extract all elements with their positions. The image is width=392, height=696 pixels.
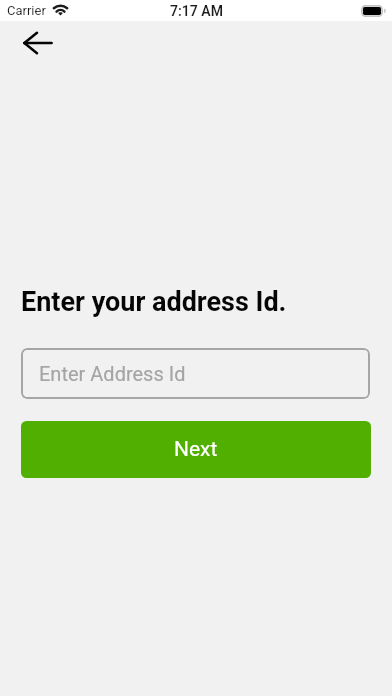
staticText: Carrier <box>7 3 46 18</box>
button[interactable]: Enter Address Id <box>21 348 370 399</box>
staticText: Enter your address Id. <box>21 286 287 318</box>
staticText: Next <box>174 437 218 462</box>
staticText: Enter Address Id <box>39 362 186 385</box>
button[interactable]: Back <box>16 21 60 65</box>
staticText: 7:17 AM <box>170 3 223 19</box>
button[interactable]: Next <box>21 421 371 478</box>
